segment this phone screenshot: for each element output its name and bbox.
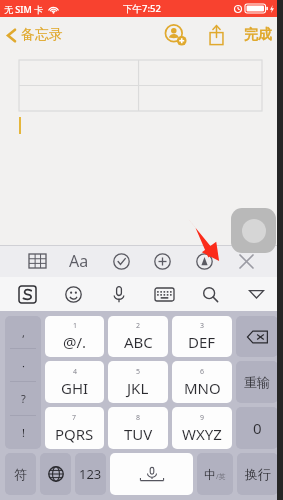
staticText: 中 [204,467,216,482]
button[interactable]: 123 [75,453,106,495]
staticText: 9 [200,413,205,423]
staticText: 完成 [244,26,272,44]
staticText: ? [21,391,26,406]
button[interactable]: 7 [45,407,104,449]
staticText: Aa [69,250,89,272]
staticText: 2 [136,321,141,331]
button[interactable]: 符 [5,453,36,495]
button[interactable]: 9 [172,407,232,449]
staticText: @/. [63,332,87,352]
button[interactable]: 中 [197,453,233,495]
staticText: WXYZ [182,424,222,444]
button[interactable]: Space, voice input [110,453,193,495]
staticText: 重输 [244,374,270,390]
button[interactable]: Hide keyboard [241,279,271,309]
staticText: 6 [200,367,205,377]
button[interactable]: 4 [45,361,104,403]
staticText: 8 [136,413,141,423]
button[interactable]: 换行 [237,453,278,495]
button[interactable]: 2 [108,316,168,357]
button[interactable]: 重输 [236,361,278,403]
button[interactable]: Emoji [58,279,88,309]
staticText: GHI [61,378,89,398]
staticText: 符 [14,466,27,482]
staticText: · [22,358,25,373]
button[interactable]: Checklist [106,246,136,276]
staticText: 0 [253,418,262,438]
staticText: 7 [72,413,77,423]
staticText: 无 SIM 卡 [4,3,44,15]
staticText: 1 [73,321,78,331]
staticText: JKL [127,378,149,398]
staticText: , [22,325,25,340]
button[interactable]: Delete [236,316,278,357]
staticText: 123 [79,465,102,483]
button[interactable]: 6 [172,361,232,403]
button[interactable]: 3 [172,316,232,357]
button[interactable]: 完成 [240,20,276,50]
button[interactable]: Switch language [40,453,71,495]
button[interactable]: Sogou input [12,279,42,309]
staticText: ! [22,425,25,440]
staticText: DEF [188,332,216,352]
button[interactable]: Add attachment [147,246,177,276]
button[interactable]: 5 [108,361,168,403]
staticText: MNO [184,378,221,398]
button[interactable]: Markup [189,246,219,276]
staticText: TUV [124,424,153,444]
staticText: 下午7:52 [123,2,161,15]
staticText: 备忘录 [21,26,63,44]
button[interactable]: Share [202,21,230,49]
button[interactable]: Search [195,279,225,309]
button[interactable]: AssistiveTouch [231,208,276,253]
button[interactable]: Aa [64,246,94,276]
button[interactable]: 8 [108,407,168,449]
button[interactable]: Voice input [104,279,134,309]
button[interactable]: 1 [45,316,104,357]
button[interactable]: 备忘录 [0,26,69,44]
staticText: 5 [136,367,141,377]
staticText: 换行 [245,466,271,482]
button[interactable]: Keyboard settings [149,279,179,309]
button[interactable]: 0 [236,407,278,449]
button[interactable]: Table [22,246,52,276]
staticText: 4 [73,367,78,377]
button[interactable]: Close [231,246,261,276]
staticText: 3 [200,321,205,331]
button[interactable]: Add collaborator [162,21,190,49]
button[interactable]: , [5,316,41,449]
staticText: PQRS [55,424,94,444]
staticText: ABC [124,332,153,352]
staticText: /英 [216,472,226,482]
